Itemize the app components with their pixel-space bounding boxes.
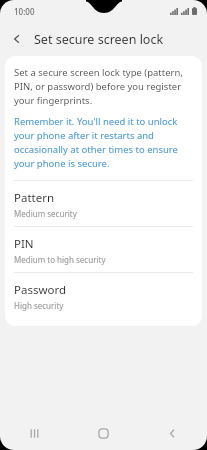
button[interactable]: PIN <box>5 227 202 272</box>
staticText: Password <box>14 282 67 298</box>
staticText: Set secure screen lock <box>34 31 164 48</box>
staticText: Set a secure screen lock type (pattern, … <box>14 66 193 107</box>
staticText: Medium to high security <box>14 254 106 265</box>
button[interactable]: Home <box>69 416 138 450</box>
staticText: Remember it. You'll need it to unlock yo… <box>14 115 193 170</box>
staticText: Pattern <box>14 190 55 206</box>
button[interactable]: Back <box>0 22 34 56</box>
staticText: High security <box>14 300 64 311</box>
button[interactable]: Recent apps <box>0 416 69 450</box>
staticText: PIN <box>14 236 34 252</box>
button[interactable]: Password <box>5 273 202 318</box>
staticText: 10:00 <box>14 6 35 17</box>
button[interactable]: Back <box>138 416 207 450</box>
button[interactable]: Pattern <box>5 181 202 226</box>
staticText: Medium security <box>14 208 77 219</box>
